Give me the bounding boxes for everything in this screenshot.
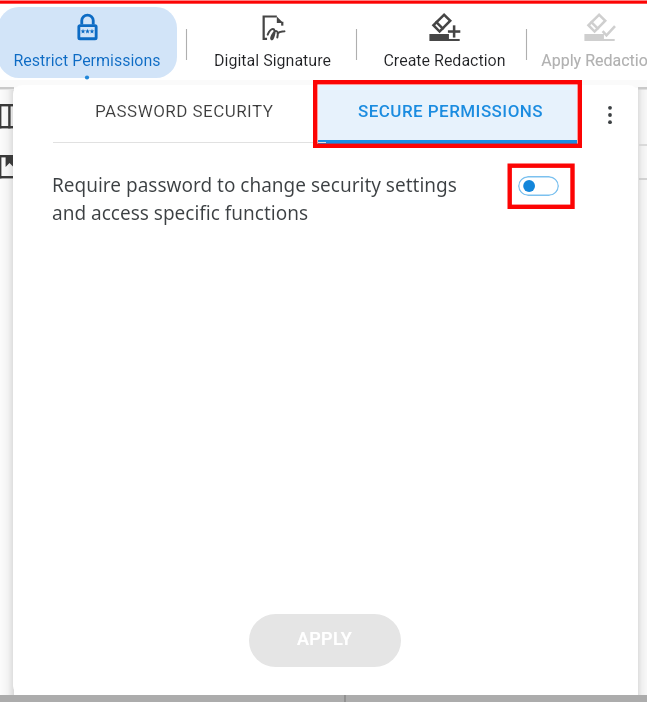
button[interactable]: More options xyxy=(587,92,633,138)
staticText: APPLY xyxy=(297,628,353,649)
button[interactable]: PASSWORD SECURITY xyxy=(54,85,313,144)
staticText: Apply Redaction xyxy=(541,51,647,70)
staticText: PASSWORD SECURITY xyxy=(95,101,274,121)
staticText: Create Redaction xyxy=(383,51,506,70)
staticText: SECURE PERMISSIONS xyxy=(358,101,544,121)
button[interactable]: Require password toggle xyxy=(518,176,559,196)
button[interactable]: SECURE PERMISSIONS xyxy=(318,85,577,144)
button[interactable]: Restrict Permissions xyxy=(0,4,180,78)
button[interactable]: Apply Redaction xyxy=(515,4,647,78)
button[interactable]: Digital Signature xyxy=(188,4,356,78)
button[interactable]: APPLY xyxy=(249,614,401,667)
staticText: Restrict Permissions xyxy=(13,51,161,70)
staticText: Require password to change security sett… xyxy=(52,172,462,226)
button[interactable]: Create Redaction xyxy=(360,4,528,78)
staticText: Digital Signature xyxy=(214,51,331,70)
